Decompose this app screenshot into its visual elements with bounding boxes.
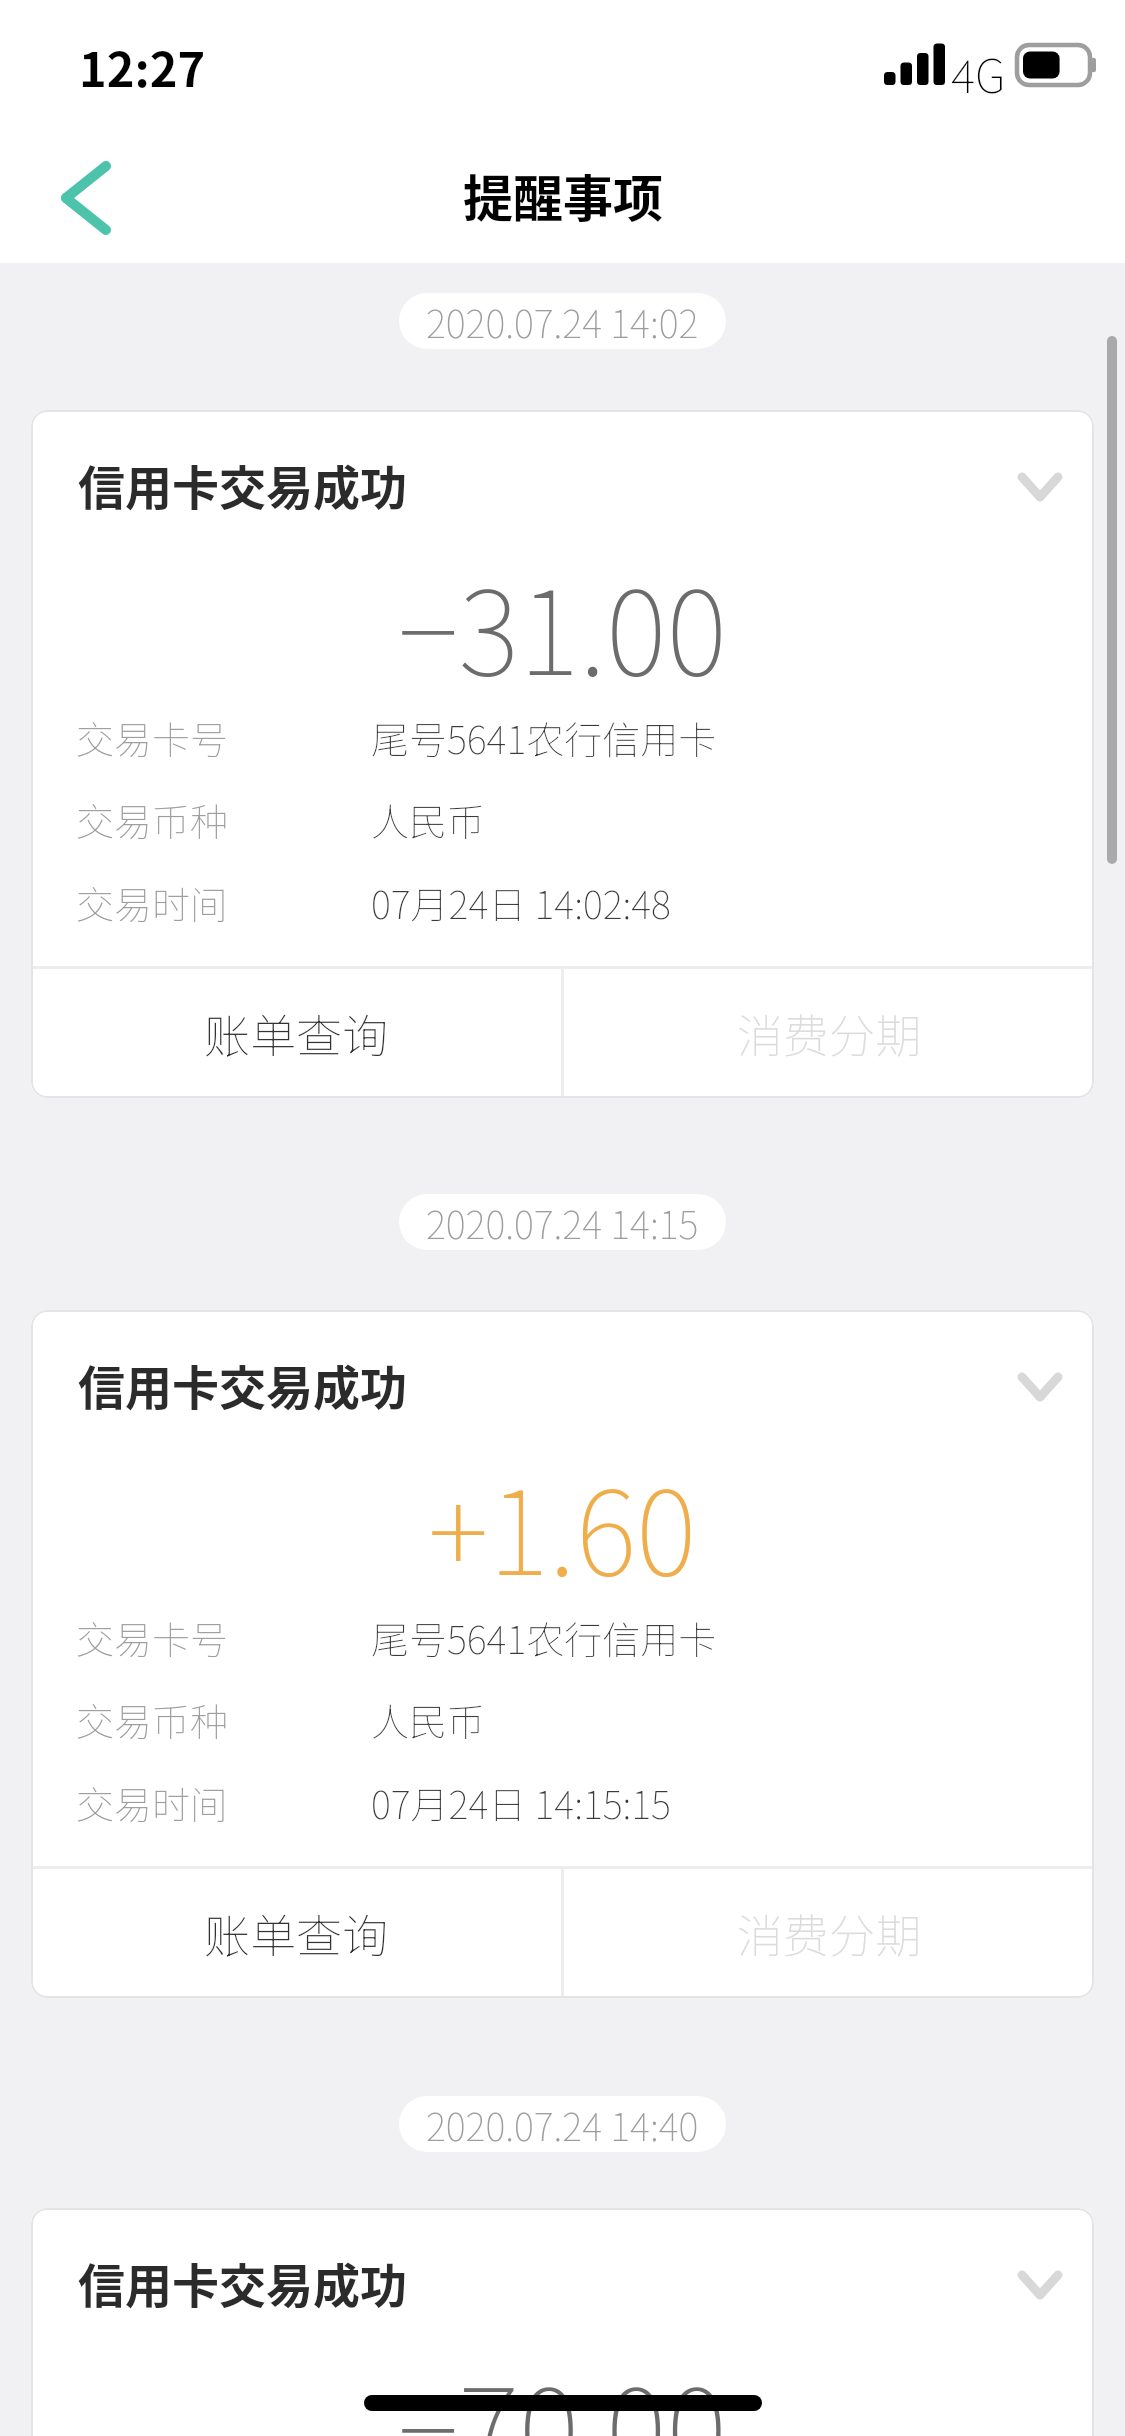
- button[interactable]: 信用卡交易成功: [31, 1310, 1094, 1998]
- button[interactable]: 账单查询: [31, 1869, 561, 1998]
- staticText: 12:27: [79, 32, 206, 100]
- staticText: 人民币: [371, 1692, 486, 1747]
- staticText: 账单查询: [204, 1900, 388, 1967]
- staticText: 2020.07.24 14:40: [426, 2097, 699, 2152]
- staticText: +1.60: [428, 1440, 697, 1590]
- button[interactable]: Expand: [986, 1352, 1094, 1422]
- staticText: 消费分期: [737, 1000, 921, 1067]
- staticText: 信用卡交易成功: [78, 1350, 407, 1418]
- staticText: 交易时间: [76, 1775, 229, 1830]
- button[interactable]: 信用卡交易成功: [31, 2208, 1094, 2436]
- staticText: 交易时间: [76, 875, 229, 930]
- button[interactable]: Back: [30, 152, 140, 244]
- staticText: 提醒事项: [463, 159, 663, 231]
- staticText: 2020.07.24 14:15: [426, 1195, 699, 1250]
- button[interactable]: 消费分期: [564, 969, 1094, 1098]
- staticText: 信用卡交易成功: [78, 450, 407, 518]
- staticText: 尾号5641农行信用卡: [371, 1610, 717, 1665]
- staticText: 人民币: [371, 792, 486, 847]
- staticText: 2020.07.24 14:02: [426, 294, 699, 349]
- staticText: 交易卡号: [76, 710, 229, 765]
- button[interactable]: Expand: [986, 2250, 1094, 2320]
- staticText: 消费分期: [737, 1900, 921, 1967]
- button[interactable]: 消费分期: [564, 1869, 1094, 1998]
- staticText: 交易币种: [76, 792, 229, 847]
- button[interactable]: 信用卡交易成功: [31, 410, 1094, 1098]
- staticText: 07月24日 14:15:15: [371, 1775, 671, 1830]
- staticText: 尾号5641农行信用卡: [371, 710, 717, 765]
- staticText: 信用卡交易成功: [78, 2248, 407, 2316]
- staticText: 07月24日 14:02:48: [371, 875, 671, 930]
- staticText: 4G: [951, 40, 1006, 107]
- staticText: −70.00: [398, 2338, 727, 2436]
- staticText: 交易卡号: [76, 1610, 229, 1665]
- staticText: 账单查询: [204, 1000, 388, 1067]
- staticText: −31.00: [398, 540, 727, 690]
- staticText: 交易币种: [76, 1692, 229, 1747]
- button[interactable]: Expand: [986, 452, 1094, 522]
- button[interactable]: 账单查询: [31, 969, 561, 1098]
